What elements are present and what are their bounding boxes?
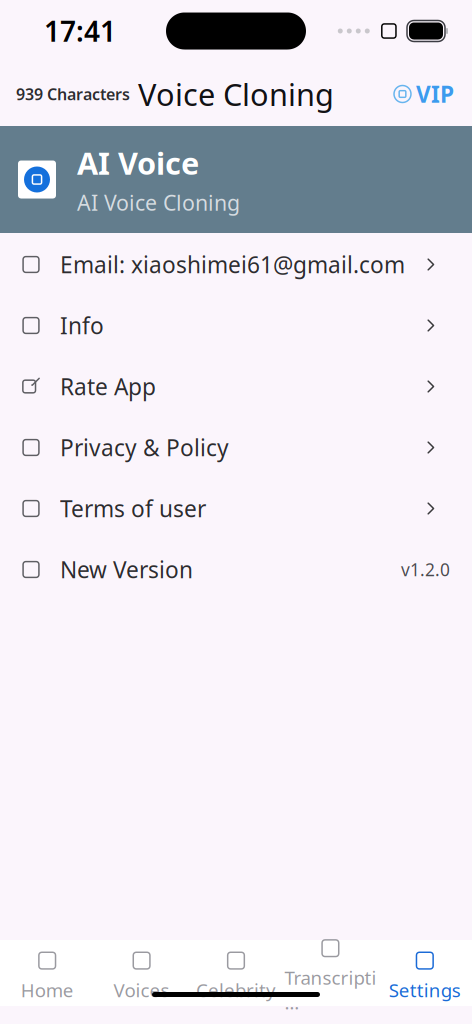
button[interactable]: Transcripti… (283, 950, 378, 1006)
button[interactable]: VIP (386, 73, 462, 115)
staticText: Home (21, 977, 74, 1002)
staticText: 17:41 (44, 12, 116, 50)
staticText: Voice Cloning (138, 74, 334, 114)
button[interactable]: Settings (378, 950, 472, 1006)
staticText: Settings (389, 977, 461, 1002)
button[interactable]: Voices (94, 950, 189, 1006)
staticText: VIP (416, 79, 454, 109)
staticText: Transcripti… (284, 965, 376, 1015)
button[interactable]: Info (0, 295, 472, 356)
button[interactable]: New Version (0, 539, 472, 600)
staticText: Email: xiaoshimei61@gmail.com (60, 249, 405, 279)
button[interactable]: Email: xiaoshimei61@gmail.com (0, 234, 472, 295)
staticText: Rate App (60, 371, 156, 401)
button[interactable]: Terms of user (0, 478, 472, 539)
staticText: AI Voice (77, 142, 199, 183)
staticText: AI Voice Cloning (77, 188, 240, 216)
button[interactable]: Privacy & Policy (0, 417, 472, 478)
button[interactable]: Home (0, 950, 94, 1006)
staticText: 939 Characters (16, 83, 130, 105)
staticText: Celebrity (196, 977, 276, 1002)
staticText: v1.2.0 (401, 558, 450, 581)
button[interactable]: Rate App (0, 356, 472, 417)
staticText: Privacy & Policy (60, 432, 229, 462)
staticText: Voices (114, 977, 170, 1002)
staticText: Info (60, 310, 104, 340)
staticText: Terms of user (60, 493, 206, 523)
button[interactable]: Celebrity (189, 950, 283, 1006)
staticText: New Version (60, 554, 193, 584)
